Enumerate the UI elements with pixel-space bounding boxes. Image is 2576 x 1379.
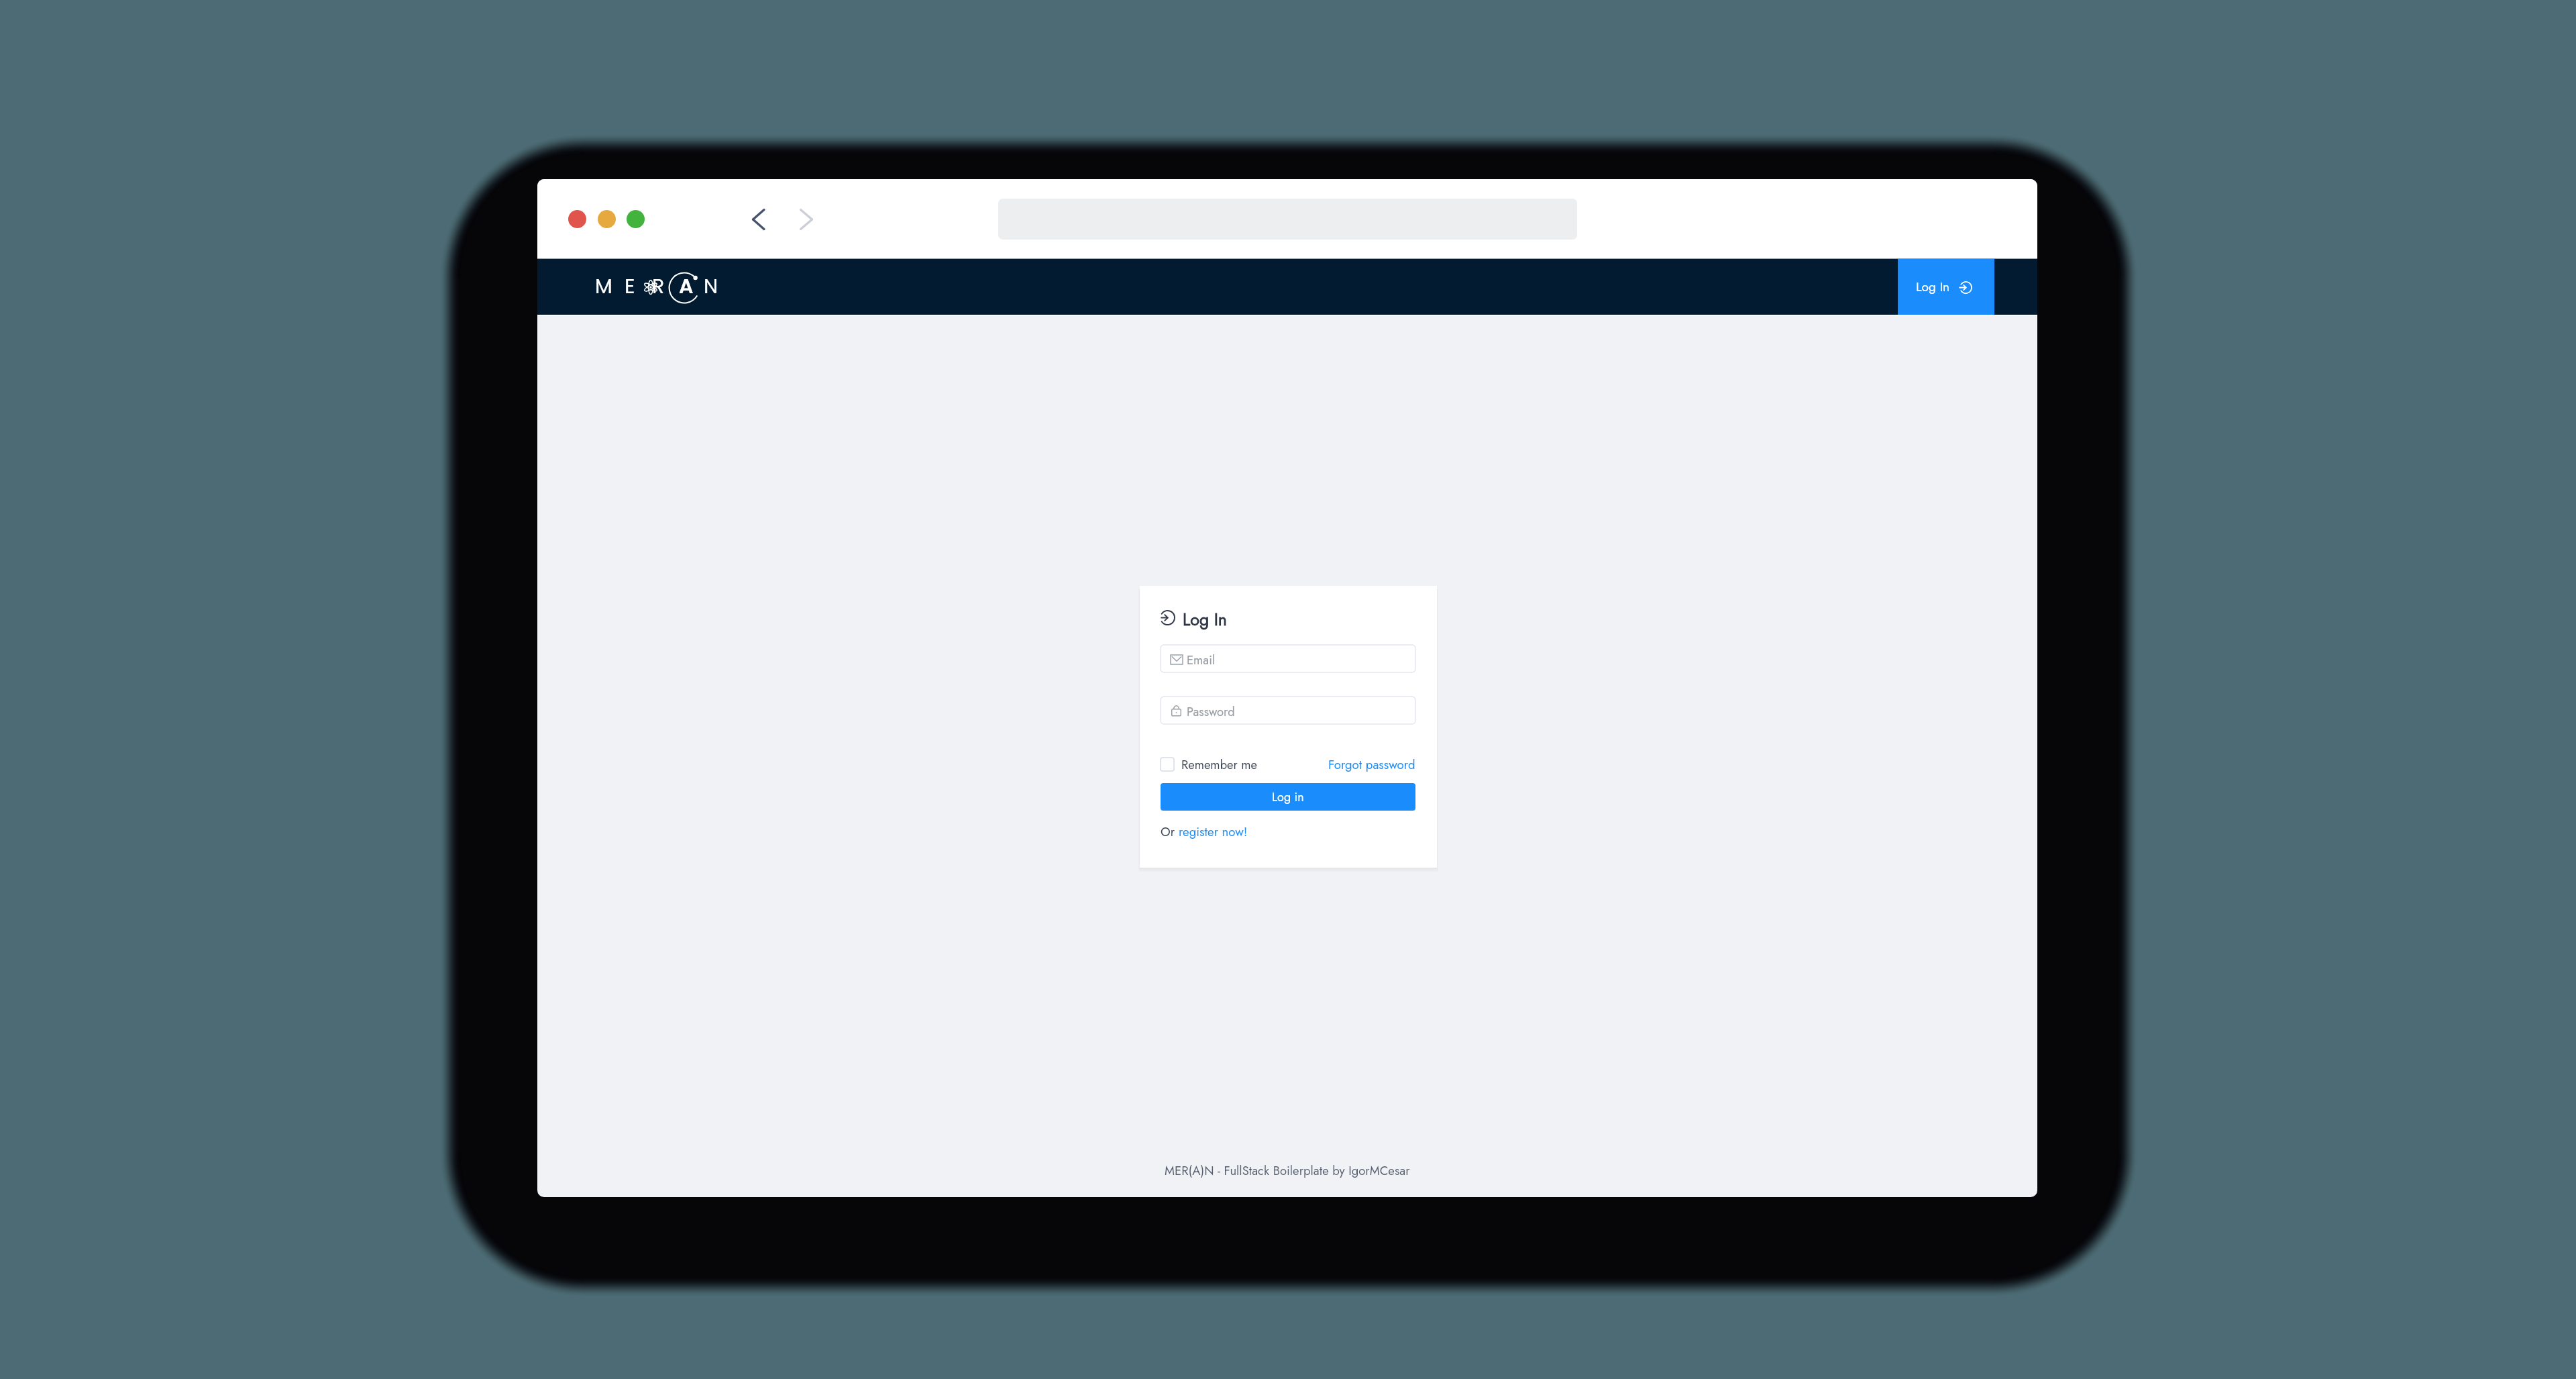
button[interactable]: Close	[568, 210, 586, 228]
button[interactable]: Log in	[1161, 783, 1415, 811]
staticText: register now!	[1179, 823, 1248, 841]
button[interactable]: Remember me	[1161, 756, 1257, 773]
staticText: Log in	[1272, 788, 1304, 806]
staticText: A	[679, 272, 694, 301]
staticText: M	[595, 272, 612, 301]
staticText: Email	[1187, 651, 1216, 668]
staticText: N	[704, 272, 718, 301]
button[interactable]: Forgot password	[1328, 756, 1415, 773]
button[interactable]: Email	[1161, 645, 1415, 672]
staticText: MER(A)N - FullStack Boilerplate by IgorM…	[1165, 1162, 1410, 1180]
button[interactable]: Maximise	[627, 210, 645, 228]
staticText: E	[625, 272, 635, 301]
button[interactable]: Back	[746, 206, 773, 233]
staticText: Password	[1187, 703, 1235, 720]
staticText: Forgot password	[1328, 756, 1415, 773]
button[interactable]: MERAN home	[596, 259, 717, 315]
staticText: Log In	[1916, 278, 1950, 296]
staticText: R	[652, 272, 665, 301]
button[interactable]: register now!	[1179, 823, 1248, 841]
button[interactable]: Log In	[1898, 259, 1994, 315]
button[interactable]: Forward	[794, 206, 820, 233]
button[interactable]: Password	[1161, 697, 1415, 724]
staticText: Log In	[1183, 607, 1227, 631]
staticText: Remember me	[1181, 756, 1257, 773]
staticText: Or	[1161, 823, 1179, 841]
button[interactable]: Minimise	[598, 210, 616, 228]
